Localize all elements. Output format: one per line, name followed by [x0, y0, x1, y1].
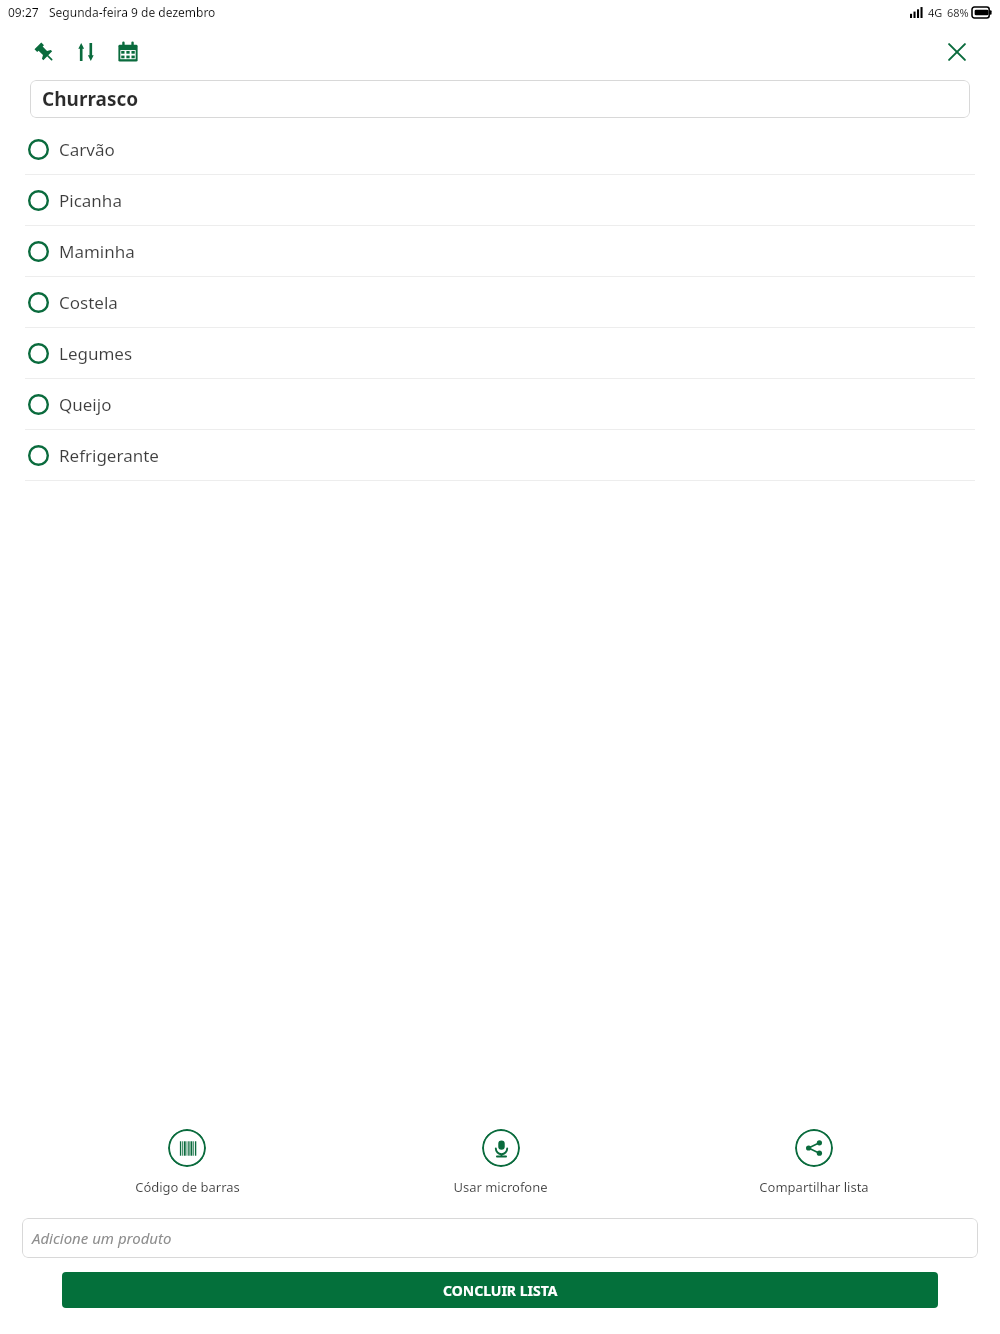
button[interactable]: Adicione um produto — [22, 1218, 978, 1258]
button[interactable]: Fixar lista — [24, 32, 64, 72]
staticText: Segunda-feira 9 de dezembro — [49, 4, 216, 20]
staticText: Compartilhar lista — [759, 1178, 869, 1196]
staticText: Churrasco — [42, 86, 139, 112]
button[interactable]: Calendário — [108, 32, 148, 72]
button[interactable]: CONCLUIR LISTA — [62, 1272, 938, 1308]
button[interactable]: Legumes — [0, 328, 1000, 378]
button[interactable]: Carvão — [0, 124, 1000, 174]
staticText: Código de barras — [135, 1178, 240, 1196]
staticText: Picanha — [59, 189, 122, 212]
staticText: 09:27 — [8, 4, 39, 20]
button[interactable]: Compartilhar lista — [657, 1125, 970, 1200]
button[interactable]: Costela — [0, 277, 1000, 327]
staticText: Carvão — [59, 138, 115, 161]
button[interactable]: Código de barras — [30, 1125, 344, 1200]
staticText: Legumes — [59, 342, 133, 365]
staticText: Maminha — [59, 240, 135, 263]
button[interactable]: Usar microfone — [344, 1125, 657, 1200]
staticText: Adicione um produto — [32, 1228, 172, 1248]
button[interactable]: Maminha — [0, 226, 1000, 276]
button[interactable]: Fechar — [936, 31, 978, 73]
staticText: 4G — [928, 5, 943, 20]
staticText: Costela — [59, 291, 118, 314]
button[interactable]: Picanha — [0, 175, 1000, 225]
staticText: Queijo — [59, 393, 112, 416]
button[interactable]: Refrigerante — [0, 430, 1000, 480]
staticText: 68% — [947, 5, 969, 20]
staticText: Usar microfone — [453, 1178, 548, 1196]
staticText: CONCLUIR LISTA — [443, 1281, 558, 1300]
staticText: Refrigerante — [59, 444, 159, 467]
button[interactable]: Queijo — [0, 379, 1000, 429]
button[interactable]: Churrasco — [30, 80, 970, 118]
button[interactable]: Ordenar — [66, 32, 106, 72]
